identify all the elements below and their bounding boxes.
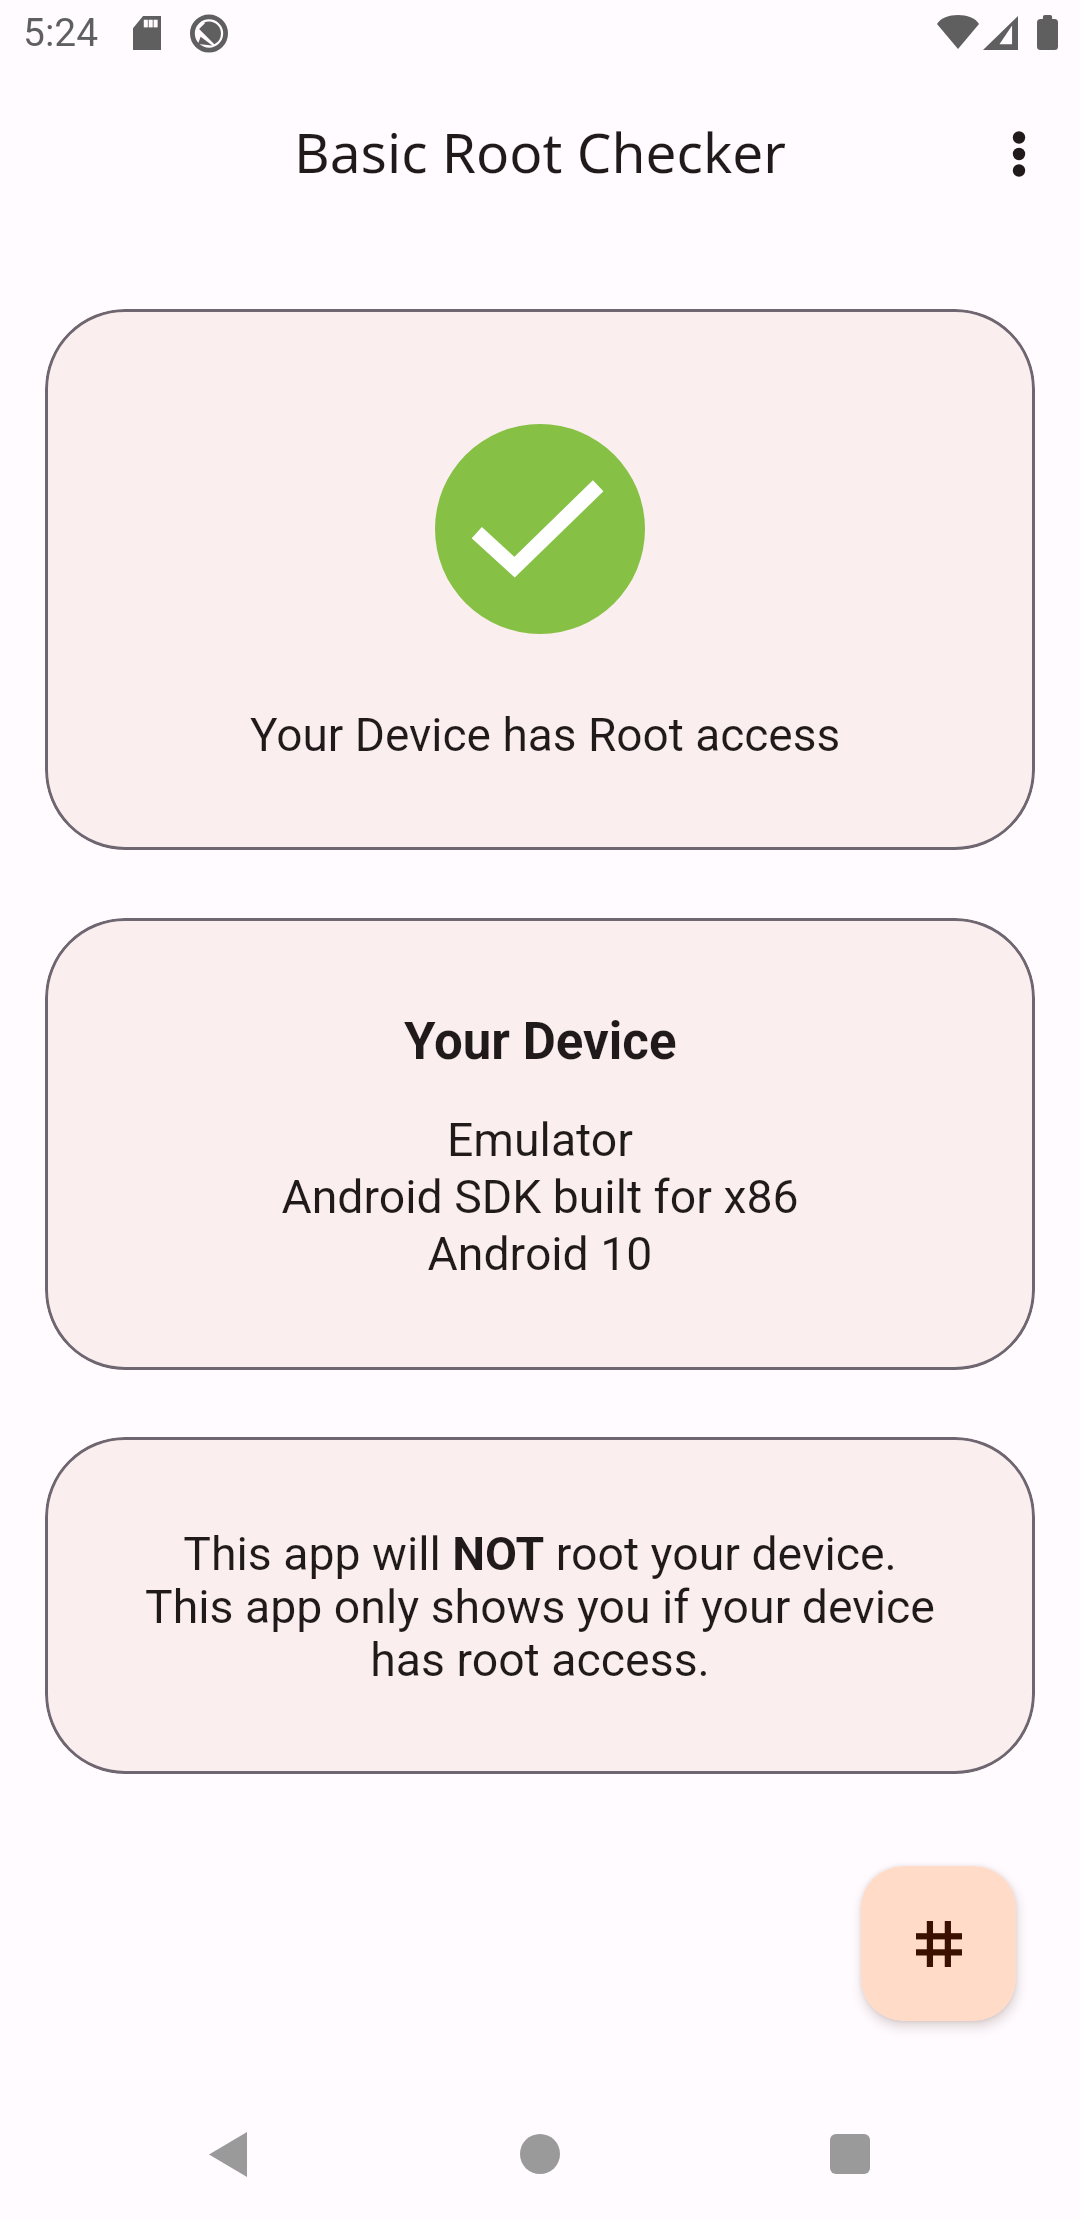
button[interactable]: More options xyxy=(955,90,1080,218)
button[interactable]: Your Device xyxy=(45,918,1035,1370)
staticText: This app will NOT root your device. This… xyxy=(145,1527,935,1687)
staticText: Basic Root Checker xyxy=(294,114,787,189)
staticText: Emulator Android SDK built for x86 Andro… xyxy=(281,1113,799,1281)
staticText: Your Device has Root access xyxy=(250,708,841,762)
button[interactable]: Recent apps xyxy=(790,2094,910,2214)
staticText: 5:24 xyxy=(23,10,99,56)
button[interactable]: Back xyxy=(168,2094,288,2214)
button[interactable]: This app will NOT root your device. This… xyxy=(45,1437,1035,1774)
staticText: Your Device xyxy=(404,1012,677,1072)
button[interactable]: Home xyxy=(480,2094,600,2214)
button[interactable]: Your Device has Root access xyxy=(45,309,1035,850)
button[interactable]: Open root shell xyxy=(861,1866,1016,2021)
